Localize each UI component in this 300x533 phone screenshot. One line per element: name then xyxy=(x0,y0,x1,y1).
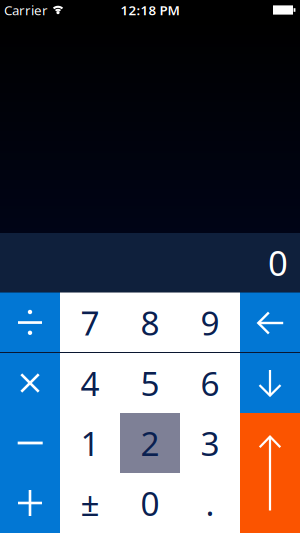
button[interactable]: 8 xyxy=(120,292,180,352)
button[interactable]: 5 xyxy=(120,353,180,413)
staticText: 12:18 PM xyxy=(120,1,179,19)
button[interactable]: ± xyxy=(60,473,120,533)
staticText: 7 xyxy=(80,300,99,345)
staticText: 3 xyxy=(200,421,219,465)
staticText: ± xyxy=(80,481,99,525)
staticText: 2 xyxy=(140,421,159,465)
staticText: 9 xyxy=(200,300,219,345)
staticText: 0 xyxy=(268,239,288,285)
button[interactable]: 3 xyxy=(180,413,240,473)
button[interactable]: 2 xyxy=(120,413,180,473)
staticText: 0 xyxy=(140,481,159,525)
button[interactable]: Divide xyxy=(0,292,60,352)
staticText: Carrier xyxy=(4,1,48,19)
staticText: 6 xyxy=(200,361,219,405)
button[interactable]: 4 xyxy=(60,353,120,413)
staticText: . xyxy=(205,481,214,525)
button[interactable]: 9 xyxy=(180,292,240,352)
button[interactable]: 7 xyxy=(60,292,120,352)
button[interactable]: Backspace xyxy=(240,292,300,352)
button[interactable]: Subtract xyxy=(0,413,60,473)
button[interactable]: 1 xyxy=(60,413,120,473)
staticText: 8 xyxy=(140,300,159,345)
staticText: 4 xyxy=(80,361,99,405)
button[interactable]: Enter xyxy=(240,413,300,533)
button[interactable]: 0 xyxy=(120,473,180,533)
staticText: 5 xyxy=(140,361,159,405)
button[interactable]: Add xyxy=(0,473,60,533)
button[interactable]: Multiply xyxy=(0,353,60,413)
staticText: 1 xyxy=(80,421,99,465)
button[interactable]: Down xyxy=(240,353,300,413)
button[interactable]: . xyxy=(180,473,240,533)
button[interactable]: 6 xyxy=(180,353,240,413)
